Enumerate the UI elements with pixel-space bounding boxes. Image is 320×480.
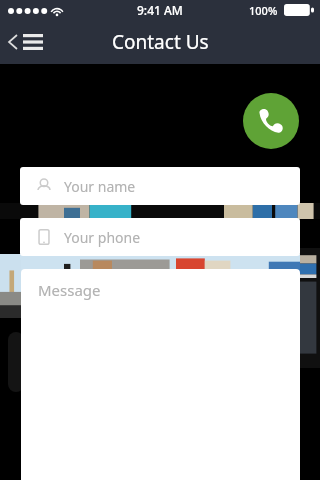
staticText: Contact Us (112, 29, 209, 55)
button[interactable]: Back (4, 27, 22, 57)
staticText: Your name (64, 177, 136, 196)
staticText: 9:41 AM (137, 2, 183, 18)
staticText: Message (38, 280, 101, 300)
staticText: Your phone (64, 228, 141, 247)
button[interactable]: Call (243, 93, 299, 149)
staticText: 100% (249, 3, 278, 18)
button[interactable]: Message (21, 269, 300, 480)
button[interactable]: Menu (20, 27, 46, 57)
button[interactable]: Your phone (20, 218, 300, 256)
button[interactable]: Your name (20, 167, 300, 205)
